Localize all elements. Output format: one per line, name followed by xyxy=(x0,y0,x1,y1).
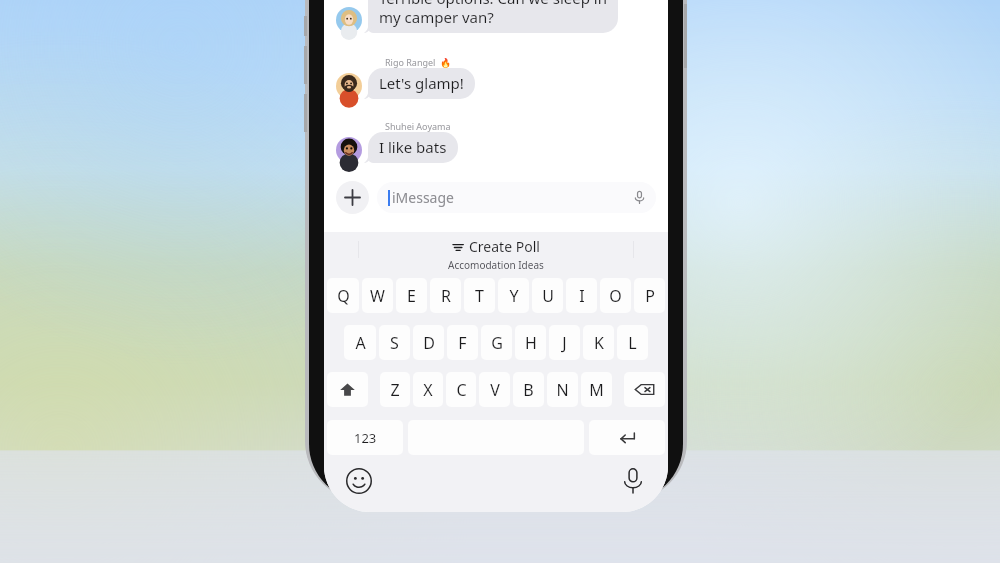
button[interactable]: Y xyxy=(498,278,529,313)
staticText: Q xyxy=(337,285,350,307)
button[interactable]: Let's glamp! xyxy=(368,68,475,99)
staticText: Create Poll xyxy=(469,237,540,256)
staticText: Rigo Rangel 🔥 xyxy=(385,56,452,68)
staticText: B xyxy=(523,379,534,401)
staticText: iMessage xyxy=(392,188,454,207)
staticText: R xyxy=(441,285,451,307)
staticText: V xyxy=(490,379,500,401)
staticText: T xyxy=(475,285,484,307)
staticText: W xyxy=(370,285,385,307)
button[interactable]: Dictation xyxy=(620,468,646,494)
button[interactable]: iMessage xyxy=(377,182,656,213)
button[interactable]: Z xyxy=(380,372,410,407)
staticText: G xyxy=(491,332,503,354)
button[interactable]: N xyxy=(547,372,578,407)
staticText: J xyxy=(562,332,567,354)
staticText: Terrible options. Can we sleep in my cam… xyxy=(379,0,607,27)
staticText: L xyxy=(628,332,637,354)
staticText: O xyxy=(609,285,622,307)
button[interactable]: U xyxy=(532,278,563,313)
staticText: C xyxy=(456,379,467,401)
button[interactable]: Shift xyxy=(327,372,368,407)
staticText: P xyxy=(645,285,655,307)
staticText: Y xyxy=(509,285,519,307)
staticText: Accomodation Ideas xyxy=(448,258,544,272)
staticText: I like bats xyxy=(379,137,447,157)
button[interactable]: O xyxy=(600,278,631,313)
staticText: N xyxy=(556,379,569,401)
button[interactable]: Q xyxy=(327,278,359,313)
button[interactable]: J xyxy=(549,325,580,360)
button[interactable]: P xyxy=(634,278,665,313)
button[interactable]: Terrible options. Can we sleep in my cam… xyxy=(368,0,618,33)
staticText: M xyxy=(589,379,604,401)
button[interactable]: Backspace xyxy=(624,372,665,407)
button[interactable]: A xyxy=(344,325,376,360)
staticText: H xyxy=(525,332,537,354)
button[interactable]: B xyxy=(513,372,544,407)
button[interactable]: 123 xyxy=(327,420,403,455)
button[interactable]: L xyxy=(617,325,648,360)
staticText: F xyxy=(458,332,467,354)
button[interactable]: F xyxy=(447,325,478,360)
staticText: X xyxy=(423,379,433,401)
staticText: U xyxy=(542,285,554,307)
button[interactable]: E xyxy=(396,278,427,313)
button[interactable]: G xyxy=(481,325,512,360)
other: Dictate xyxy=(633,191,646,204)
staticText: Let's glamp! xyxy=(379,73,464,93)
button[interactable]: Create Poll xyxy=(324,232,668,272)
button[interactable]: C xyxy=(446,372,476,407)
button[interactable]: S xyxy=(379,325,410,360)
button[interactable]: I xyxy=(566,278,597,313)
button[interactable]: X xyxy=(413,372,443,407)
staticText: I xyxy=(579,285,585,307)
staticText: D xyxy=(423,332,435,354)
staticText: Shuhei Aoyama xyxy=(385,120,451,132)
button[interactable]: M xyxy=(581,372,612,407)
staticText: S xyxy=(390,332,399,354)
staticText: E xyxy=(407,285,416,307)
button[interactable]: Emoji xyxy=(346,468,372,494)
button[interactable]: D xyxy=(413,325,444,360)
button[interactable]: W xyxy=(362,278,393,313)
button[interactable]: I like bats xyxy=(368,132,458,163)
staticText: 123 xyxy=(354,429,377,447)
staticText: A xyxy=(355,332,366,354)
button[interactable]: R xyxy=(430,278,461,313)
button[interactable]: H xyxy=(515,325,546,360)
button[interactable]: T xyxy=(464,278,495,313)
button[interactable]: K xyxy=(583,325,614,360)
button[interactable]: V xyxy=(479,372,510,407)
staticText: K xyxy=(594,332,604,354)
button[interactable]: Return xyxy=(589,420,665,455)
staticText: Z xyxy=(390,379,400,401)
button[interactable]: Add attachment xyxy=(336,181,369,214)
